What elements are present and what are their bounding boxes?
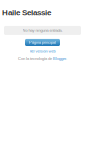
staticText: Haile Selassie	[2, 8, 51, 17]
staticText: Blogger.	[53, 56, 67, 61]
button[interactable]: Blogger.	[53, 56, 67, 61]
button[interactable]: Ver versión web	[29, 49, 55, 53]
button[interactable]: Página principal	[25, 39, 60, 46]
staticText: Página principal	[29, 40, 56, 45]
staticText: Ver versión web	[29, 49, 55, 53]
staticText: No hay ninguna entrada.	[22, 28, 62, 33]
staticText: Con la tecnología de	[18, 56, 52, 61]
